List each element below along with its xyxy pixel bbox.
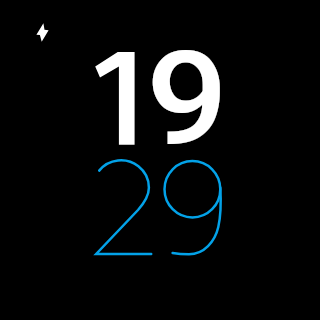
button[interactable]: Watch face showing 19:29, charging (0, 0, 320, 320)
